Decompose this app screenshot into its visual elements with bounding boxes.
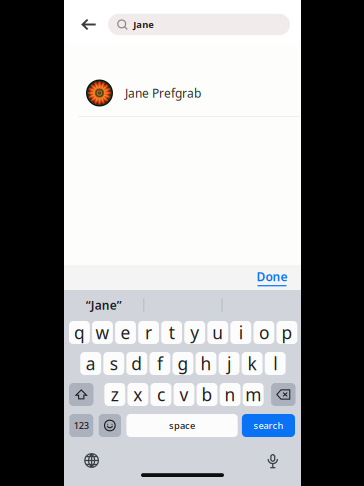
button[interactable]: y	[184, 321, 205, 344]
staticText: 123	[74, 419, 89, 432]
button[interactable]: o	[253, 321, 274, 344]
button[interactable]: e	[115, 321, 136, 344]
staticText: m	[245, 383, 261, 406]
staticText: e	[120, 321, 130, 344]
staticText: a	[86, 352, 96, 375]
button[interactable]: z	[104, 383, 125, 406]
staticText: space	[169, 419, 195, 432]
button[interactable]: Dictation	[267, 453, 279, 468]
button[interactable]: l	[265, 352, 286, 375]
staticText: r	[145, 321, 152, 344]
button[interactable]: k	[242, 352, 262, 375]
staticText: “Jane”	[86, 297, 122, 313]
button[interactable]: space	[126, 414, 238, 437]
staticText: b	[201, 383, 212, 406]
button[interactable]: a	[80, 352, 101, 375]
staticText: z	[111, 383, 119, 406]
staticText: u	[212, 321, 223, 344]
button[interactable]: u	[207, 321, 228, 344]
staticText: n	[225, 383, 236, 406]
button[interactable]: m	[243, 383, 264, 406]
button[interactable]: Next keyboard	[84, 453, 99, 468]
button[interactable]: “Jane”	[64, 289, 143, 320]
button[interactable]: Back	[77, 12, 100, 36]
button[interactable]: t	[161, 321, 182, 344]
button[interactable]: c	[150, 383, 171, 406]
button[interactable]: Jane Prefgrab	[64, 70, 301, 117]
button[interactable]: n	[220, 383, 240, 406]
button[interactable]: Emoji keyboard	[99, 414, 121, 437]
staticText: Jane Prefgrab	[125, 85, 201, 101]
staticText: search	[253, 419, 283, 432]
button[interactable]: Jane	[108, 14, 290, 35]
staticText: Jane	[133, 18, 154, 31]
button[interactable]: q	[69, 321, 90, 344]
staticText: t	[169, 321, 175, 344]
button[interactable]: g	[172, 352, 193, 375]
staticText: q	[74, 321, 85, 344]
staticText: j	[227, 352, 231, 375]
button[interactable]: w	[92, 321, 113, 344]
staticText: k	[248, 352, 257, 375]
staticText: f	[157, 352, 163, 375]
button[interactable]: s	[103, 352, 124, 375]
button[interactable]: 123	[69, 414, 93, 437]
button[interactable]: p	[276, 321, 297, 344]
button[interactable]: x	[127, 383, 148, 406]
button[interactable]: search	[242, 414, 295, 437]
staticText: v	[179, 383, 188, 406]
staticText: i	[239, 321, 243, 344]
button[interactable]: v	[174, 383, 194, 406]
button[interactable]: j	[219, 352, 239, 375]
staticText: h	[200, 352, 211, 375]
staticText: l	[273, 352, 277, 375]
button[interactable]: Shift	[69, 383, 93, 406]
staticText: x	[133, 383, 142, 406]
button[interactable]: i	[230, 321, 251, 344]
button[interactable]: b	[197, 383, 217, 406]
button[interactable]: r	[138, 321, 159, 344]
button[interactable]: h	[196, 352, 216, 375]
staticText: g	[177, 352, 188, 375]
staticText: o	[259, 321, 269, 344]
button[interactable]: Done	[256, 265, 287, 290]
button[interactable]: d	[126, 352, 147, 375]
staticText: p	[281, 321, 292, 344]
staticText: d	[131, 352, 142, 375]
staticText: w	[95, 321, 109, 344]
button[interactable]: f	[149, 352, 170, 375]
button[interactable]: Delete	[271, 383, 296, 406]
staticText: c	[157, 383, 165, 406]
staticText: s	[110, 352, 118, 375]
staticText: Done	[256, 269, 287, 285]
staticText: y	[190, 321, 199, 344]
